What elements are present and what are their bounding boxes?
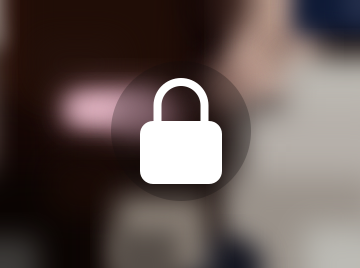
button[interactable]: Locked <box>111 61 251 201</box>
